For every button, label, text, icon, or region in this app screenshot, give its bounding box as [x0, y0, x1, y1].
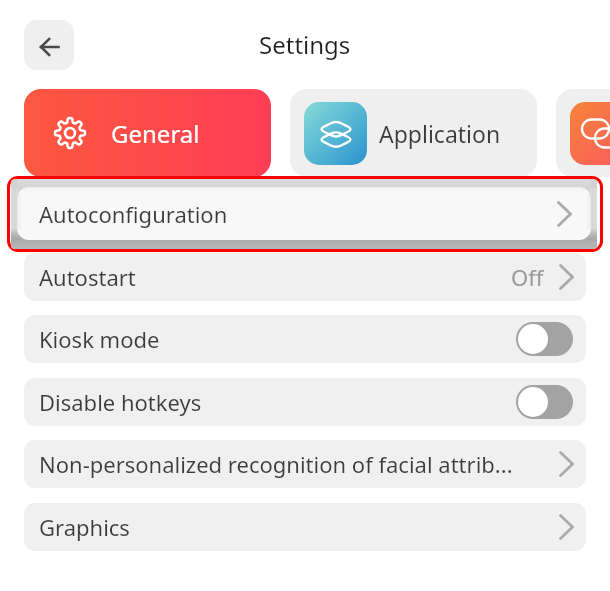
button[interactable]: Toggle Kiosk mode	[516, 322, 573, 356]
button[interactable]: Autoconfiguration	[17, 187, 591, 240]
staticText: Graphics	[39, 512, 559, 542]
button[interactable]: Disable hotkeys	[24, 378, 586, 426]
staticText: Off	[511, 262, 544, 292]
button[interactable]: General	[24, 89, 271, 177]
button[interactable]: Application	[290, 89, 537, 177]
button[interactable]: Connection	[556, 89, 610, 177]
staticText: Non-personalized recognition of facial a…	[39, 449, 559, 479]
button[interactable]: Autostart	[24, 253, 586, 301]
button[interactable]: Graphics	[24, 503, 586, 551]
button[interactable]: Non-personalized recognition of facial a…	[24, 440, 586, 488]
staticText: Disable hotkeys	[39, 387, 516, 417]
button[interactable]: Back	[24, 20, 74, 70]
staticText: Autoconfiguration	[39, 199, 557, 229]
staticText: Settings	[259, 28, 351, 61]
staticText: Autostart	[39, 262, 511, 292]
staticText: Kiosk mode	[39, 324, 516, 354]
button[interactable]: Kiosk mode	[24, 315, 586, 363]
staticText: Application	[379, 118, 501, 149]
staticText: General	[111, 117, 200, 150]
button[interactable]: Toggle Disable hotkeys	[516, 385, 573, 419]
